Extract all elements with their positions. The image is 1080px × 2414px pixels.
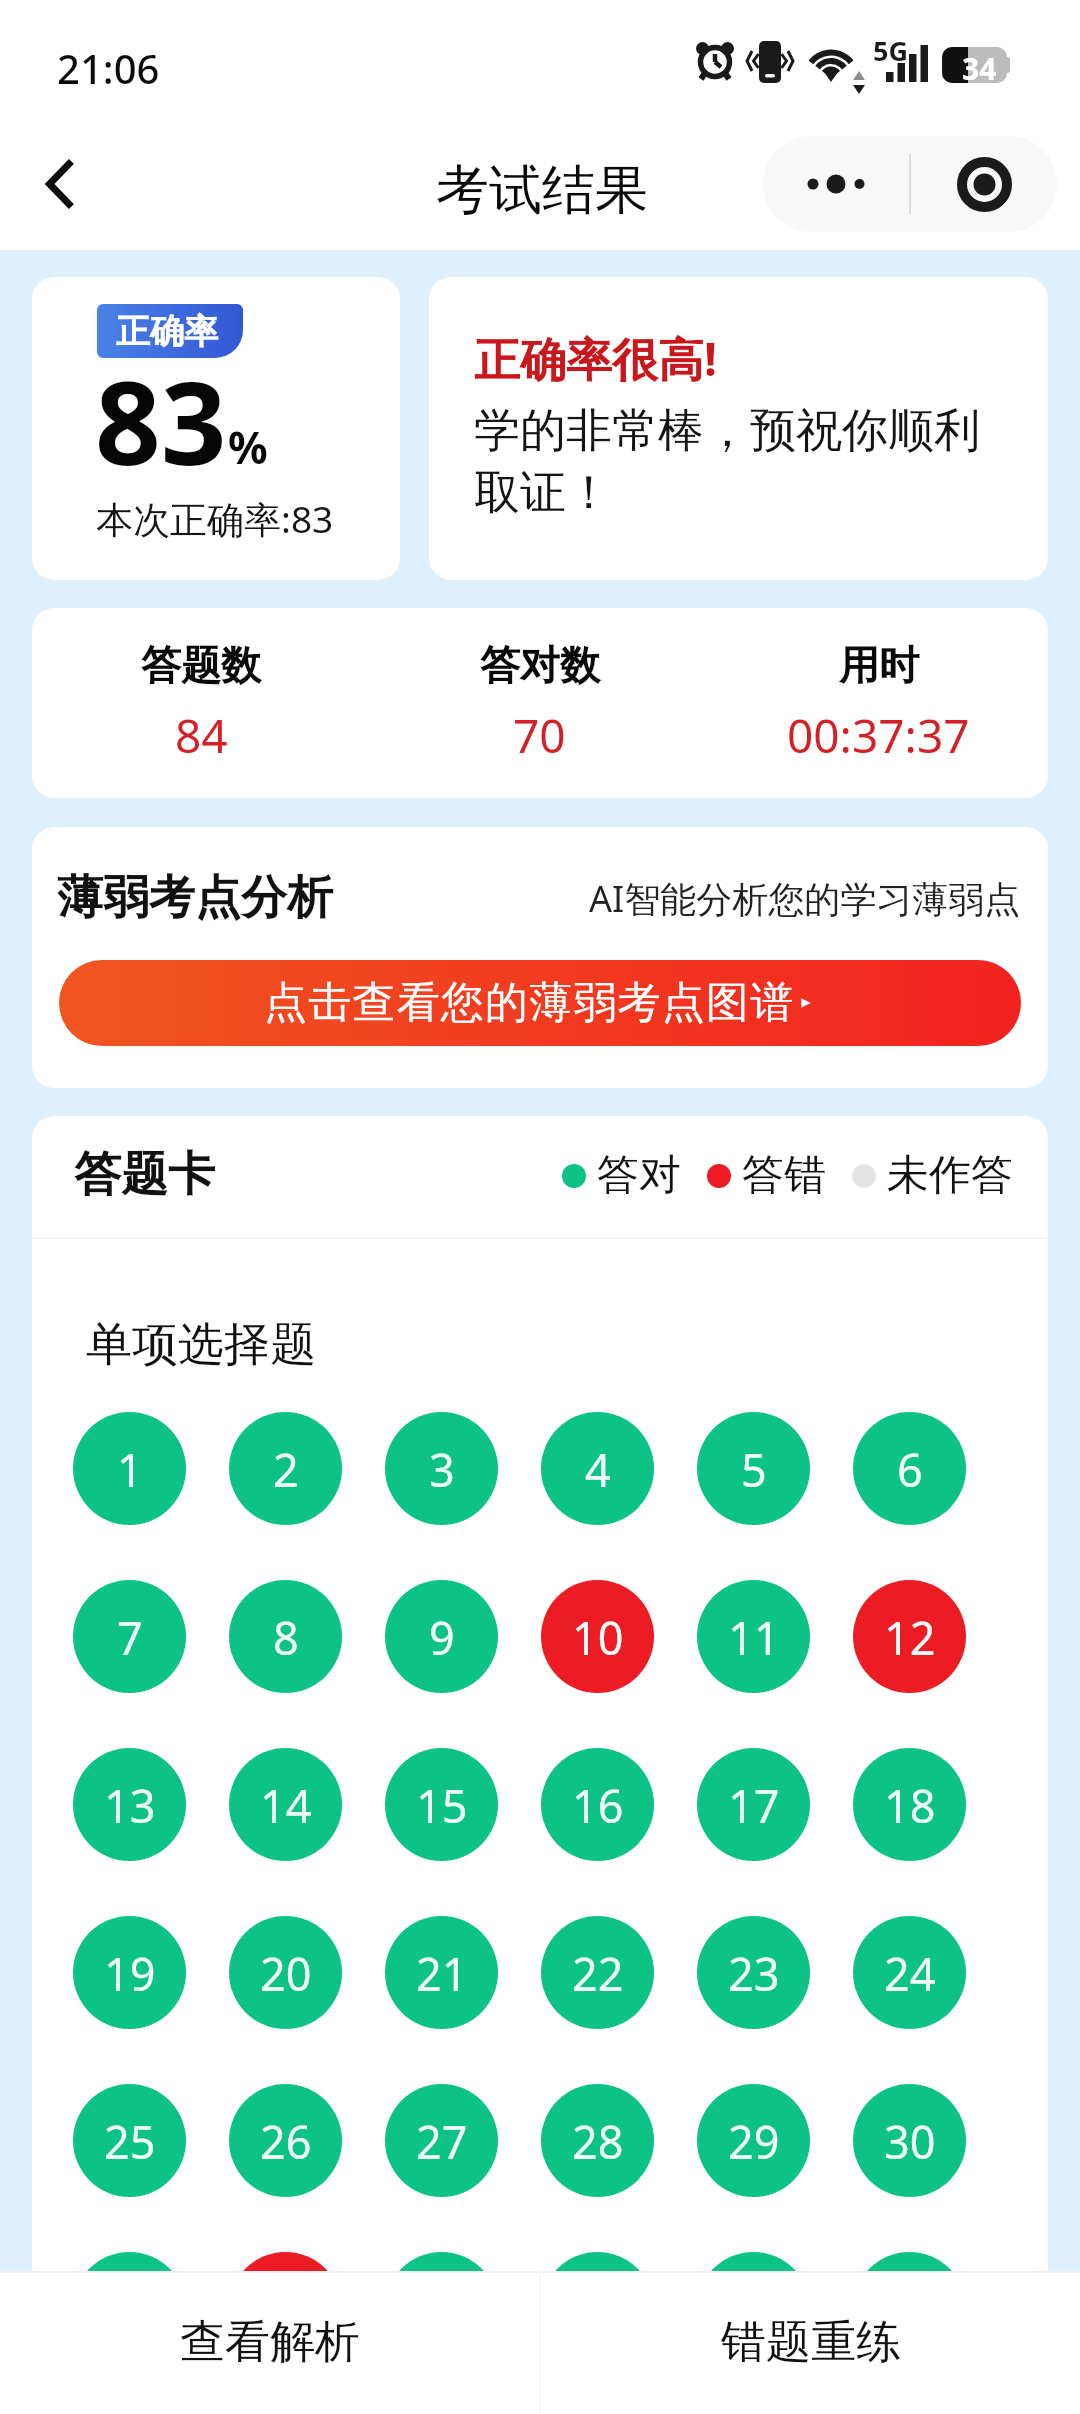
staticText: 20 [260,1943,312,2004]
button[interactable]: 20 [229,1916,342,2029]
staticText: 16 [572,1775,624,1836]
button[interactable]: 11 [697,1580,810,1693]
staticText: 5G [873,32,908,69]
staticText: 6 [897,1439,923,1500]
button[interactable]: 3 [385,1412,498,1525]
button[interactable]: 9 [385,1580,498,1693]
staticText: AI智能分析您的学习薄弱点 [589,874,1021,923]
staticText: 8 [273,1607,299,1668]
staticText: 答错 [742,1149,826,1202]
staticText: 30 [884,2111,936,2172]
staticText: 5 [741,1439,767,1500]
button[interactable]: 23 [697,1916,810,2029]
button[interactable]: More options [763,136,909,232]
button[interactable]: 25 [73,2084,186,2197]
button[interactable]: 19 [73,1916,186,2029]
staticText: 22 [572,1943,624,2004]
button[interactable]: 26 [229,2084,342,2197]
button[interactable]: 32 [229,2252,342,2271]
staticText: 26 [260,2111,312,2172]
staticText: 7 [117,1607,143,1668]
staticText: 10 [572,1607,624,1668]
staticText: % [228,417,268,477]
staticText: 84 [175,704,228,767]
button[interactable]: 6 [853,1412,966,1525]
button[interactable]: 21 [385,1916,498,2029]
button[interactable]: Back [26,150,94,218]
staticText: 错题重练 [721,2314,901,2371]
staticText: 答题数 [141,640,261,690]
staticText: 83 [95,342,227,499]
staticText: 14 [260,1775,312,1836]
staticText: 答对数 [480,640,600,690]
button[interactable]: 24 [853,1916,966,2029]
staticText: 查看解析 [180,2314,360,2371]
button[interactable]: 5 [697,1412,810,1525]
staticText: 4 [585,1439,611,1500]
staticText: 薄弱考点分析 [57,869,333,927]
button[interactable]: 12 [853,1580,966,1693]
button[interactable]: 35 [697,2252,810,2271]
button[interactable]: 28 [541,2084,654,2197]
staticText: 答对 [597,1149,681,1202]
button[interactable]: 33 [385,2252,498,2271]
button[interactable]: 15 [385,1748,498,1861]
button[interactable]: 错题重练 [541,2271,1080,2414]
staticText: 27 [416,2111,468,2172]
staticText: 15 [416,1775,468,1836]
staticText: 单项选择题 [86,1316,316,1374]
button[interactable]: 22 [541,1916,654,2029]
button[interactable]: 27 [385,2084,498,2197]
staticText: 00:37:37 [787,704,970,767]
staticText: 正确率很高! [474,327,717,390]
staticText: 34 [962,48,997,89]
staticText: 29 [728,2111,780,2172]
button[interactable]: Close mini program [911,136,1057,232]
button[interactable]: 17 [697,1748,810,1861]
button[interactable]: 31 [73,2252,186,2271]
button[interactable]: 7 [73,1580,186,1693]
button[interactable]: 34 [541,2252,654,2271]
staticText: 11 [728,1607,780,1668]
button[interactable]: 8 [229,1580,342,1693]
staticText: 2 [273,1439,299,1500]
button[interactable]: 14 [229,1748,342,1861]
button[interactable]: 查看解析 [0,2271,539,2414]
staticText: 1 [117,1439,143,1500]
staticText: 9 [429,1607,455,1668]
staticText: 点击查看您的薄弱考点图谱 [264,976,795,1030]
staticText: 未作答 [887,1149,1013,1202]
staticText: 21 [416,1943,468,2004]
button[interactable]: 16 [541,1748,654,1861]
staticText: 25 [104,2111,156,2172]
staticText: 12 [884,1607,936,1668]
staticText: 24 [884,1943,936,2004]
button[interactable]: 29 [697,2084,810,2197]
button[interactable]: 36 [853,2252,966,2271]
staticText: 本次正确率:83 [96,493,334,544]
button[interactable]: 10 [541,1580,654,1693]
button[interactable]: 点击查看您的薄弱考点图谱 [59,960,1021,1046]
staticText: 学的非常棒，预祝你顺利 取证！ [474,402,980,522]
staticText: 13 [104,1775,156,1836]
button[interactable]: 1 [73,1412,186,1525]
staticText: 23 [728,1943,780,2004]
staticText: 17 [728,1775,780,1836]
button[interactable]: 13 [73,1748,186,1861]
staticText: 28 [572,2111,624,2172]
button[interactable]: 18 [853,1748,966,1861]
staticText: 用时 [839,640,919,690]
staticText: 考试结果 [436,157,648,224]
button[interactable]: 2 [229,1412,342,1525]
staticText: 18 [884,1775,936,1836]
button[interactable]: 4 [541,1412,654,1525]
staticText: 正确率 [116,310,218,353]
staticText: 70 [513,704,566,767]
staticText: 3 [429,1439,455,1500]
button[interactable]: 30 [853,2084,966,2197]
staticText: 21:06 [57,41,160,95]
staticText: 答题卡 [74,1145,215,1204]
staticText: 19 [104,1943,156,2004]
